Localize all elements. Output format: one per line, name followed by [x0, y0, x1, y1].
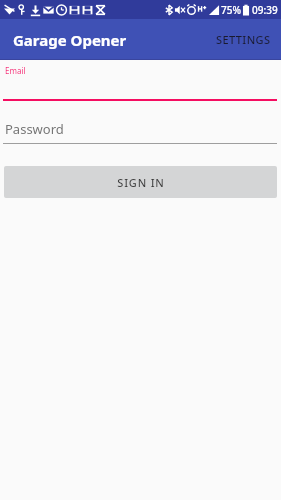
button[interactable]: SIGN IN [4, 166, 277, 198]
button[interactable]: Password [0, 119, 281, 144]
staticText: Password [5, 120, 64, 138]
staticText: Garage Opener [13, 30, 127, 50]
staticText: SIGN IN [117, 175, 165, 190]
button[interactable]: Email [0, 63, 281, 101]
button[interactable]: SETTINGS [206, 24, 281, 55]
staticText: 75% [221, 3, 241, 17]
staticText: SETTINGS [216, 32, 271, 47]
staticText: 09:39 [252, 3, 278, 17]
staticText: Email [5, 65, 26, 76]
